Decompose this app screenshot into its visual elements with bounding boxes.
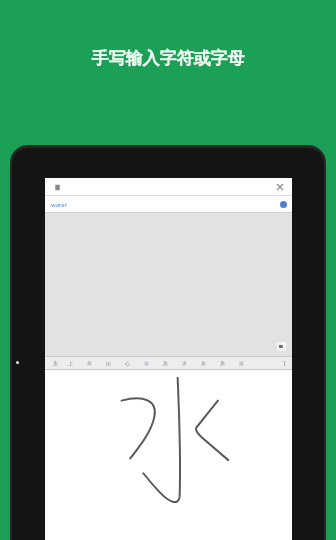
- staticText: 沁: [106, 360, 111, 366]
- staticText: 汖: [239, 360, 244, 366]
- button[interactable]: 永: [194, 357, 213, 369]
- button[interactable]: 氺: [137, 357, 156, 369]
- button[interactable]: 汖: [232, 357, 251, 369]
- button[interactable]: Menu: [50, 180, 64, 194]
- staticText: 永: [53, 360, 58, 366]
- staticText: 氺: [144, 360, 149, 366]
- button[interactable]: Resize: [277, 342, 286, 351]
- button[interactable]: Close: [273, 180, 287, 194]
- button[interactable]: 氷: [213, 357, 232, 369]
- other: Info: [280, 201, 287, 208]
- button[interactable]: 氷: [80, 357, 99, 369]
- button[interactable]: 心: [118, 357, 137, 369]
- button[interactable]: Handwriting input area: [45, 370, 292, 540]
- staticText: 氷: [87, 360, 92, 366]
- staticText: 上: [68, 360, 73, 366]
- button[interactable]: 冰: [175, 357, 194, 369]
- button[interactable]: 永: [50, 357, 61, 369]
- staticText: water: [51, 201, 68, 209]
- staticText: 氷: [220, 360, 225, 366]
- button[interactable]: 上: [61, 357, 80, 369]
- button[interactable]: 沁: [99, 357, 118, 369]
- staticText: 手写输入字符或字母: [0, 48, 336, 69]
- button[interactable]: water: [45, 196, 292, 213]
- staticText: 心: [125, 360, 130, 366]
- button[interactable]: More: [281, 358, 287, 368]
- staticText: 冰: [182, 360, 187, 366]
- button[interactable]: 永: [156, 357, 175, 369]
- staticText: 永: [201, 360, 206, 366]
- staticText: 永: [163, 360, 168, 366]
